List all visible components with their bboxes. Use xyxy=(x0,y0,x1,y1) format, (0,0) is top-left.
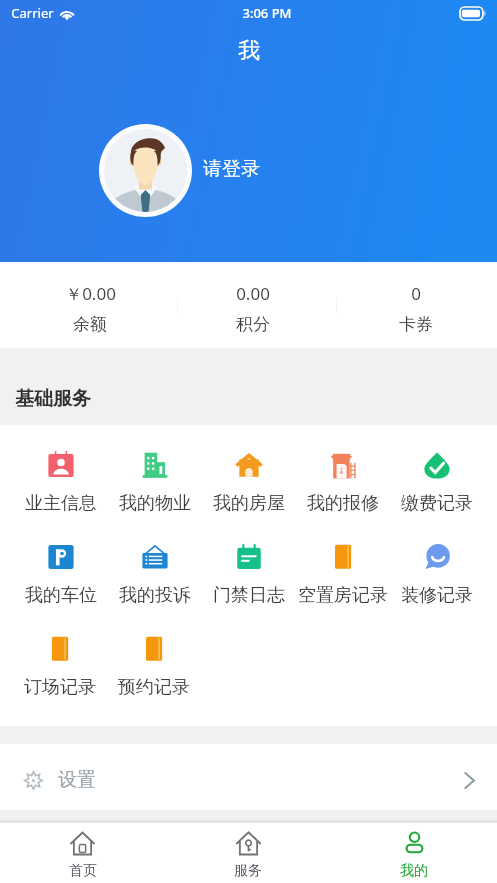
button[interactable]: 门禁日志 xyxy=(202,543,296,607)
staticText: 装修记录 xyxy=(401,584,473,607)
staticText: 卡券 xyxy=(399,314,433,335)
button[interactable]: 业主信息 xyxy=(13,451,108,515)
button[interactable]: 设置 xyxy=(0,744,497,810)
staticText: 0 xyxy=(411,282,421,305)
staticText: 我 xyxy=(238,37,260,65)
staticText: 我的房屋 xyxy=(213,492,285,515)
staticText: 空置房记录 xyxy=(298,584,388,607)
button[interactable]: 0.00 xyxy=(171,262,334,348)
staticText: 请登录 xyxy=(203,157,260,181)
button[interactable]: 空置房记录 xyxy=(296,543,390,607)
button[interactable]: 预约记录 xyxy=(107,635,201,699)
staticText: 0.00 xyxy=(236,282,270,305)
button[interactable]: 我的车位 xyxy=(13,543,108,607)
button[interactable]: 装修记录 xyxy=(390,543,484,607)
staticText: 我的车位 xyxy=(25,584,97,607)
button[interactable]: 请登录 xyxy=(203,157,260,181)
staticText: 积分 xyxy=(236,314,270,335)
staticText: 我的物业 xyxy=(119,492,191,515)
staticText: ￥0.00 xyxy=(65,282,116,305)
staticText: 缴费记录 xyxy=(401,492,473,515)
button[interactable]: ￥0.00 xyxy=(9,262,171,348)
staticText: 预约记录 xyxy=(118,676,190,699)
staticText: 订场记录 xyxy=(24,676,96,699)
button[interactable]: 我的投诉 xyxy=(108,543,202,607)
staticText: 门禁日志 xyxy=(213,584,285,607)
staticText: 我的报修 xyxy=(307,492,379,515)
staticText: 我的 xyxy=(400,862,428,880)
button[interactable]: Avatar xyxy=(99,124,192,217)
staticText: 余额 xyxy=(73,314,107,335)
staticText: 基础服务 xyxy=(15,387,91,411)
staticText: Carrier xyxy=(11,4,54,22)
button[interactable]: 订场记录 xyxy=(13,635,107,699)
button[interactable]: 缴费记录 xyxy=(390,451,484,515)
button[interactable]: 我的房屋 xyxy=(202,451,296,515)
staticText: 设置 xyxy=(58,768,96,792)
staticText: 我的投诉 xyxy=(119,584,191,607)
staticText: 业主信息 xyxy=(25,492,97,515)
button[interactable]: 我的报修 xyxy=(296,451,390,515)
button[interactable]: 首页 xyxy=(0,823,165,883)
staticText: 服务 xyxy=(234,862,262,880)
button[interactable]: 服务 xyxy=(165,823,331,883)
button[interactable]: 0 xyxy=(334,262,497,348)
staticText: 3:06 PM xyxy=(242,4,292,22)
button[interactable]: 我的 xyxy=(331,823,497,883)
button[interactable]: 我的物业 xyxy=(108,451,202,515)
staticText: 首页 xyxy=(69,862,97,880)
